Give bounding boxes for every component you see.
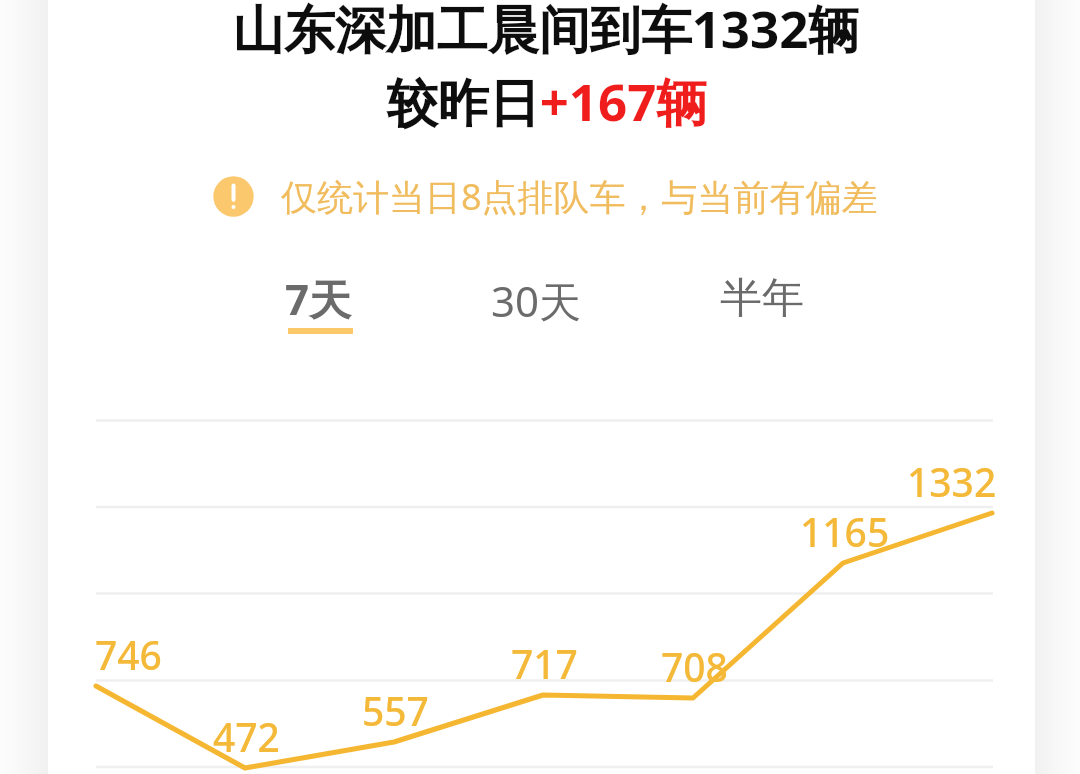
- staticText: 472: [213, 710, 280, 763]
- staticText: 仅统计当日8点排队车，与当前有偏差: [281, 172, 878, 221]
- staticText: 山东深加工晨间到车1332辆: [6, 0, 1080, 63]
- staticText: 1165: [800, 505, 890, 558]
- staticText: 较昨日+167辆: [7, 66, 1080, 136]
- staticText: 746: [95, 628, 162, 681]
- button[interactable]: 30天: [477, 264, 589, 326]
- other: 说明提示: [213, 176, 254, 217]
- button[interactable]: 半年: [706, 264, 814, 326]
- staticText: 30天: [491, 272, 582, 329]
- staticText: 557: [362, 684, 429, 737]
- button[interactable]: 7天: [272, 262, 366, 344]
- staticText: 708: [661, 640, 728, 693]
- staticText: 1332: [907, 455, 997, 508]
- staticText: 半年: [720, 272, 804, 325]
- staticText: 7天: [285, 270, 352, 327]
- staticText: 717: [511, 637, 578, 690]
